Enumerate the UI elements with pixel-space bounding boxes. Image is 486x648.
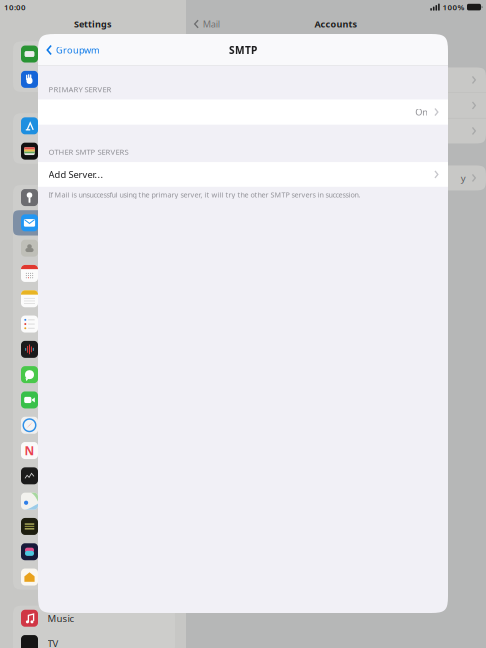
button[interactable]: Stocks xyxy=(13,463,175,488)
button[interactable]: Passwords xyxy=(13,185,175,210)
button[interactable]: Reminders xyxy=(13,311,175,337)
staticText: TV xyxy=(47,637,58,648)
staticText: Battery xyxy=(47,47,78,61)
button[interactable]: On xyxy=(38,99,448,125)
button[interactable]: Notes xyxy=(13,286,175,311)
button[interactable]: Add Server... xyxy=(38,162,448,187)
button[interactable]: Home xyxy=(13,564,175,590)
button[interactable]: Music xyxy=(13,606,175,631)
button[interactable]: Contacts xyxy=(13,235,175,261)
button[interactable]: Battery xyxy=(13,41,175,67)
button[interactable]: Mail xyxy=(13,210,175,235)
button[interactable]: Groupwm xyxy=(38,34,106,66)
button[interactable]: Calendar xyxy=(13,261,175,286)
staticText: N xyxy=(24,442,34,459)
button[interactable]: Safari xyxy=(13,413,175,438)
button[interactable]: Maps xyxy=(13,488,175,514)
staticText: ACCOUNTS xyxy=(213,52,254,62)
button[interactable]: Translate xyxy=(13,514,175,539)
button[interactable]: Shortcuts xyxy=(13,539,175,564)
staticText: Music xyxy=(47,612,74,625)
staticText: Passwords xyxy=(47,191,97,204)
staticText: 10:00 xyxy=(4,2,26,12)
button[interactable]: Messages xyxy=(13,362,175,387)
button[interactable]: N xyxy=(13,438,175,463)
button[interactable]: Voice Memos xyxy=(13,337,175,362)
staticText: Mail xyxy=(203,18,220,30)
button[interactable]: FaceTime xyxy=(13,387,175,413)
button[interactable]: Privacy & Security xyxy=(13,67,175,92)
staticText: Accounts xyxy=(314,18,357,30)
staticText: PRIMARY SERVER xyxy=(48,84,111,94)
button[interactable]: Wallet & Apple Pay xyxy=(13,138,175,164)
staticText: If Mail is unsuccessful using the primar… xyxy=(48,190,360,200)
staticText: Groupwm xyxy=(56,44,100,56)
staticText: SMTP xyxy=(229,43,257,57)
staticText: On xyxy=(415,106,428,118)
staticText: Add Server... xyxy=(48,168,103,181)
staticText: OTHER SMTP SERVERS xyxy=(48,147,128,157)
staticText: 100% xyxy=(443,2,465,12)
staticText: Settings xyxy=(74,18,112,30)
staticText: App Store xyxy=(47,119,90,132)
staticText: Wallet & Apple Pay xyxy=(47,145,127,158)
staticText: y xyxy=(461,171,466,184)
button[interactable]: TV xyxy=(13,631,175,648)
button[interactable]: App Store xyxy=(13,113,175,138)
